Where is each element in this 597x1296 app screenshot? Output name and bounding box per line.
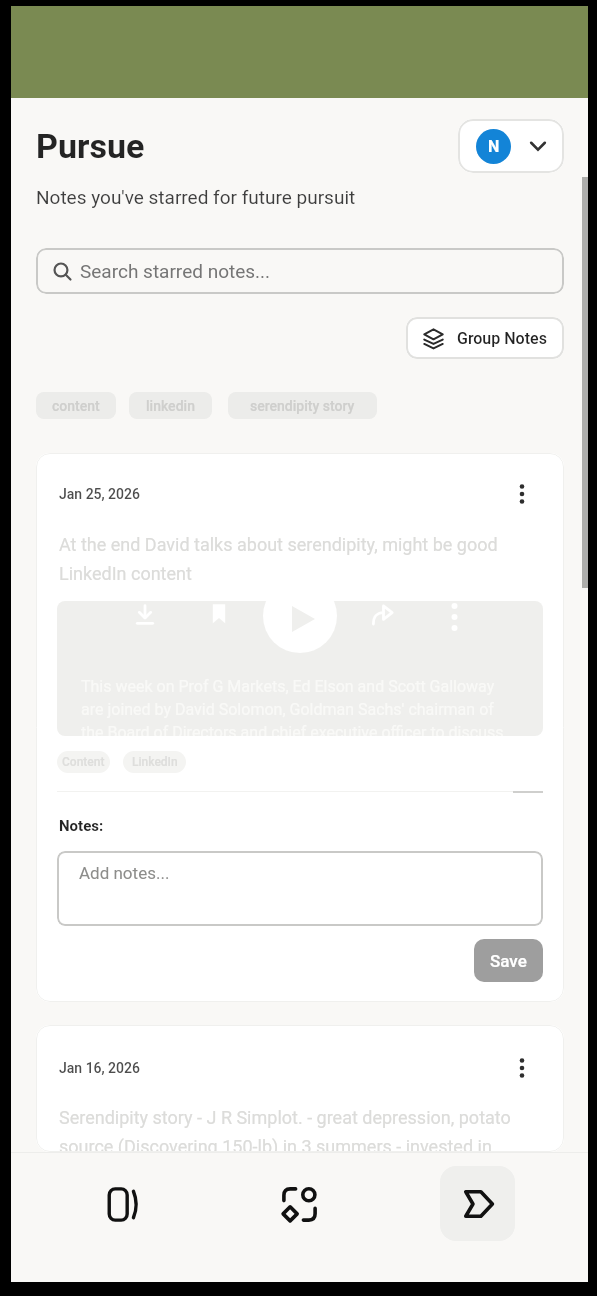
staticText: N <box>488 137 500 156</box>
staticText: Content <box>62 755 105 769</box>
button[interactable]: linkedin <box>129 392 212 419</box>
staticText: content <box>52 398 100 414</box>
staticText: Jan 25, 2026 <box>59 486 140 502</box>
button[interactable]: content <box>36 392 116 419</box>
staticText: Notes you've starred for future pursuit <box>36 186 356 208</box>
button[interactable] <box>519 484 525 504</box>
button[interactable]: N <box>458 119 564 173</box>
staticText: linkedin <box>146 398 195 414</box>
button[interactable]: Save <box>474 939 543 982</box>
button[interactable]: Group Notes <box>406 317 564 359</box>
button[interactable] <box>92 1174 152 1234</box>
staticText: serendipity story <box>250 398 355 414</box>
staticText: At the end David talks about serendipity… <box>59 534 498 584</box>
staticText: Group Notes <box>457 329 547 348</box>
staticText: Search starred notes... <box>80 260 271 282</box>
button[interactable] <box>440 1166 515 1241</box>
staticText: Notes: <box>59 817 104 835</box>
button[interactable] <box>519 1058 525 1078</box>
button[interactable]: Add notes... <box>57 851 543 926</box>
button[interactable]: serendipity story <box>228 392 377 419</box>
staticText: This week on Prof G Markets, Ed Elson an… <box>81 677 504 736</box>
staticText: Save <box>490 951 527 971</box>
staticText: Add notes... <box>79 863 170 883</box>
button[interactable] <box>269 1174 329 1234</box>
staticText: LinkedIn <box>132 755 178 769</box>
staticText: Pursue <box>36 126 145 166</box>
staticText: Serendipity story - J R Simplot. - great… <box>59 1107 511 1152</box>
staticText: Jan 16, 2026 <box>59 1060 140 1076</box>
button[interactable]: Search starred notes... <box>36 248 564 294</box>
